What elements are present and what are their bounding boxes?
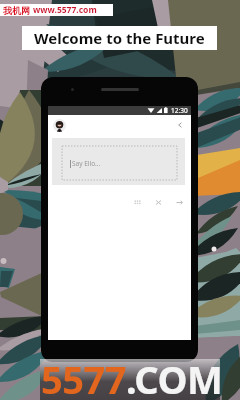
staticText: www.5577.com xyxy=(33,4,97,16)
staticText: Welcome to the Future xyxy=(34,28,205,48)
button[interactable]: Send xyxy=(171,194,187,210)
button[interactable]: Close xyxy=(150,194,166,210)
button[interactable]: Back xyxy=(172,117,188,133)
button[interactable]: Media xyxy=(129,194,145,210)
button[interactable]: Profile xyxy=(53,119,66,132)
staticText: .COM xyxy=(126,353,223,400)
staticText: 我机网 xyxy=(3,5,30,16)
button[interactable]: Say Ello... xyxy=(62,146,177,180)
staticText: Say Ello... xyxy=(72,159,101,168)
staticText: 12:30 xyxy=(171,106,188,115)
staticText: 5577 xyxy=(41,353,126,400)
